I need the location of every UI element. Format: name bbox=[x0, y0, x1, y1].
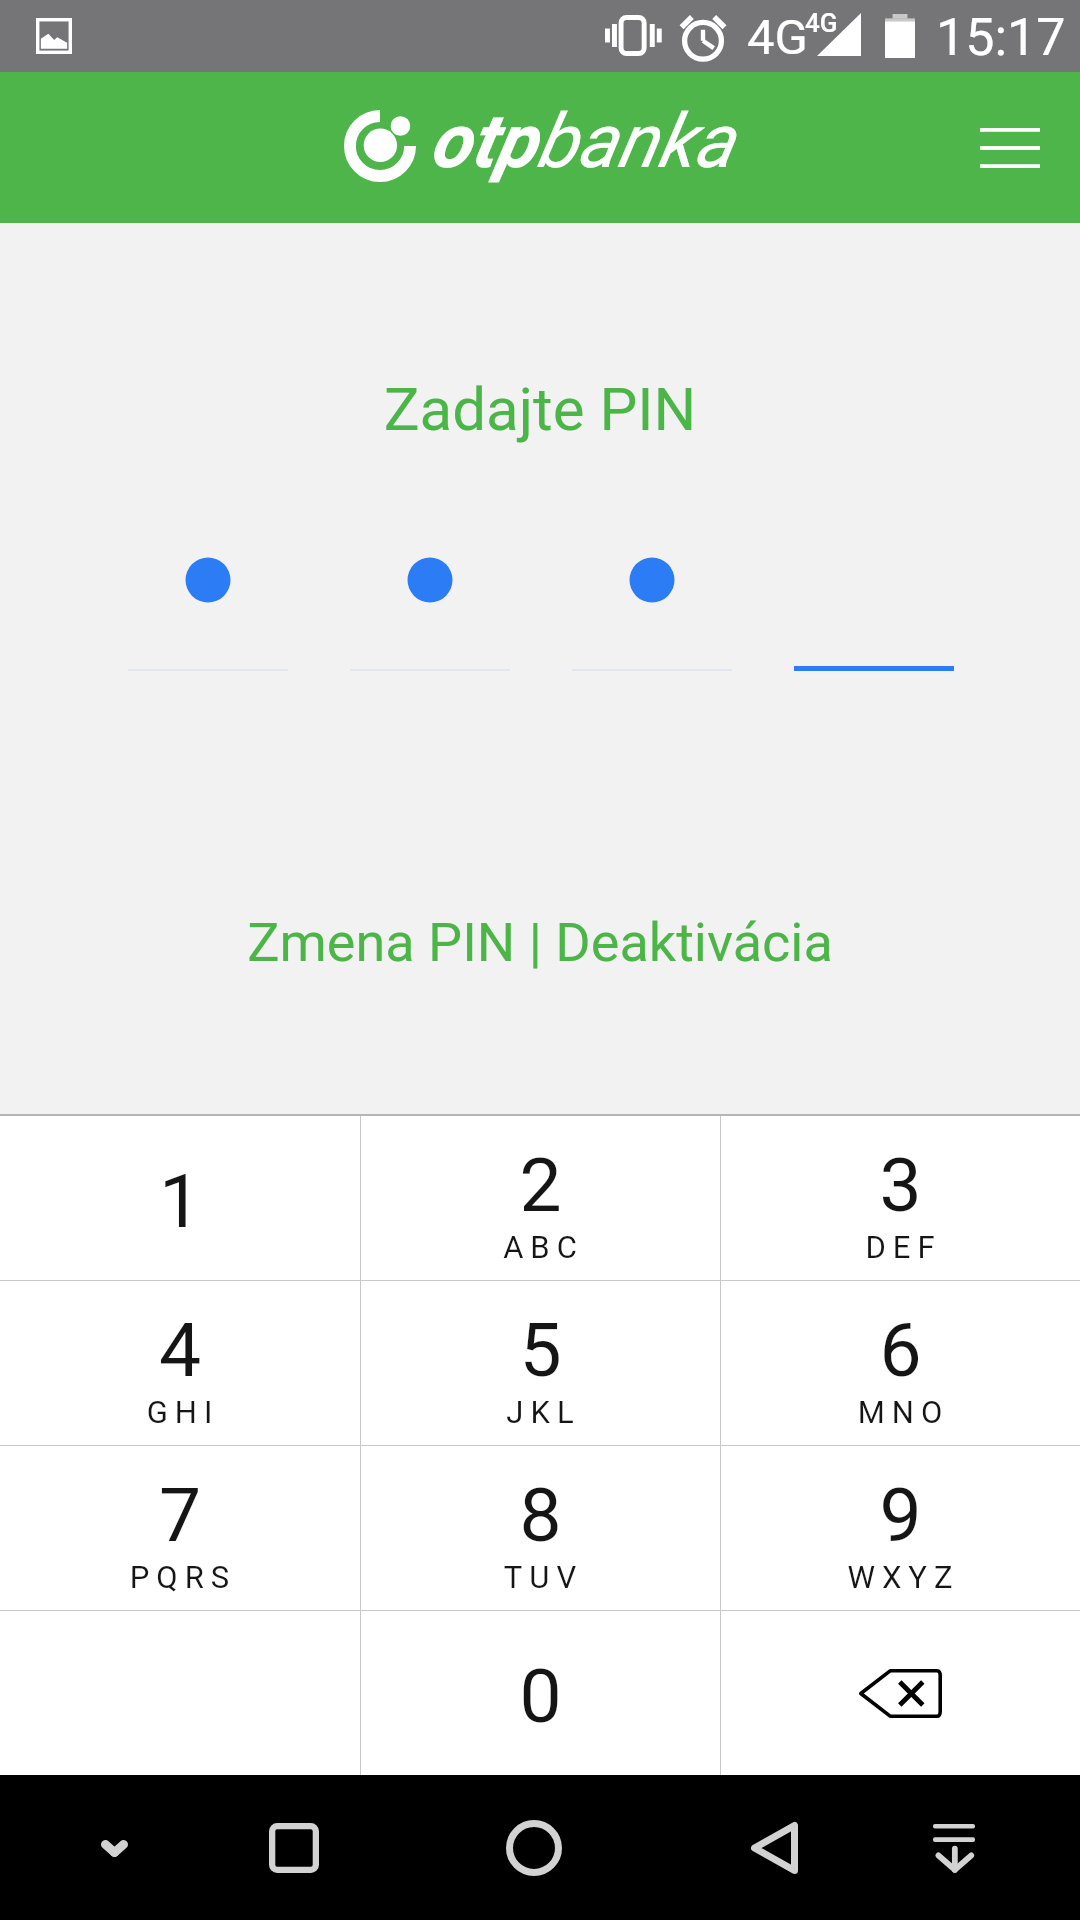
staticText: Zadajte PIN bbox=[0, 374, 1080, 444]
staticText: otp bbox=[429, 97, 536, 185]
staticText: JKL bbox=[364, 1394, 723, 1430]
staticText: 5 bbox=[361, 1306, 720, 1394]
button[interactable]: 0 bbox=[361, 1611, 720, 1775]
button[interactable]: Recents bbox=[234, 1788, 354, 1908]
button[interactable]: 6 bbox=[721, 1281, 1080, 1445]
button[interactable]: Zmena PIN | Deaktivácia bbox=[0, 911, 1080, 974]
staticText: 2 bbox=[361, 1141, 720, 1229]
button[interactable]: Menu bbox=[935, 72, 1080, 223]
button[interactable]: Home bbox=[474, 1788, 594, 1908]
staticText: DEF bbox=[724, 1229, 1080, 1265]
staticText: ABC bbox=[364, 1229, 723, 1265]
staticText: 4G bbox=[747, 9, 808, 66]
button[interactable]: Hide keyboard bbox=[894, 1788, 1014, 1908]
button[interactable]: 3 bbox=[721, 1116, 1080, 1280]
staticText: WXYZ bbox=[724, 1559, 1080, 1595]
staticText: TUV bbox=[364, 1559, 723, 1595]
button[interactable]: 9 bbox=[721, 1446, 1080, 1610]
button[interactable]: 1 bbox=[0, 1116, 360, 1280]
staticText: MNO bbox=[724, 1394, 1080, 1430]
button[interactable]: 7 bbox=[0, 1446, 360, 1610]
staticText: 6 bbox=[721, 1306, 1080, 1394]
button[interactable]: 5 bbox=[361, 1281, 720, 1445]
button[interactable]: 8 bbox=[361, 1446, 720, 1610]
staticText: GHI bbox=[3, 1394, 363, 1430]
staticText: 9 bbox=[721, 1471, 1080, 1559]
staticText: PQRS bbox=[3, 1559, 363, 1595]
button[interactable]: Hide bbox=[54, 1788, 174, 1908]
staticText: 15:17 bbox=[936, 7, 1066, 68]
staticText: 0 bbox=[361, 1652, 720, 1740]
staticText: 1 bbox=[0, 1157, 360, 1245]
staticText: 7 bbox=[0, 1471, 360, 1559]
staticText: banka bbox=[536, 97, 734, 185]
button[interactable]: Backspace bbox=[721, 1611, 1080, 1775]
button[interactable]: Back bbox=[714, 1788, 834, 1908]
staticText: 4 bbox=[0, 1306, 360, 1394]
staticText: 8 bbox=[361, 1471, 720, 1559]
button[interactable]: 2 bbox=[361, 1116, 720, 1280]
staticText: 3 bbox=[721, 1141, 1080, 1229]
staticText: 4G bbox=[805, 8, 838, 38]
button[interactable]: 4 bbox=[0, 1281, 360, 1445]
